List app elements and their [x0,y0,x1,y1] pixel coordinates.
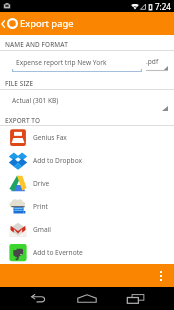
staticText: Print [33,202,48,211]
button[interactable]: Drive [0,172,174,195]
staticText: .pdf [146,57,159,66]
button[interactable]: More options [156,267,166,285]
button[interactable]: Print [0,195,174,218]
staticText: EXPORT TO [5,116,41,125]
staticText: Add to Dropbox [33,156,82,165]
staticText: NAME AND FORMAT [5,40,68,49]
staticText: Expense report trip New York [16,58,107,67]
button[interactable]: Add to Dropbox [0,149,174,172]
staticText: Gmail [33,225,52,234]
button[interactable]: Expense report trip New York [12,51,142,72]
staticText: FILE SIZE [5,79,34,88]
button[interactable]: Recent apps [123,287,147,310]
button[interactable]: Genius Fax [0,126,174,149]
staticText: 7:24 [155,1,171,12]
button[interactable]: Add to Evernote [0,241,174,264]
staticText: Add to Evernote [33,248,83,257]
staticText: Drive [33,179,50,188]
button[interactable]: .pdf [146,51,168,72]
staticText: Export page [20,17,74,30]
staticText: Genius Fax [33,133,67,142]
button[interactable]: Home [75,287,99,310]
button[interactable]: Back [26,287,50,310]
button[interactable]: Gmail [0,218,174,241]
staticText: Actual (301 KB) [12,96,59,105]
button[interactable]: Actual (301 KB) [0,90,174,114]
button[interactable]: Navigate up [0,18,18,29]
